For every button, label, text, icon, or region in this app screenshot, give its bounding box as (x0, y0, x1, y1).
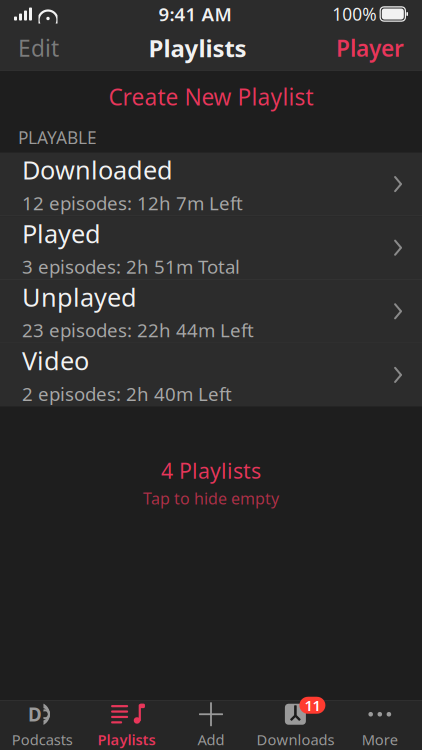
staticText: Podcasts (12, 730, 73, 749)
button[interactable]: Player (318, 26, 422, 70)
staticText: 11 (304, 695, 320, 715)
staticText: 4 Playlists (161, 456, 261, 485)
staticText: Edit (18, 33, 59, 63)
staticText: Played (22, 216, 101, 250)
staticText: 12 episodes: 12h 7m Left (22, 190, 243, 215)
button[interactable]: Played (0, 216, 422, 280)
staticText: Video (22, 344, 89, 377)
button[interactable]: Edit (0, 26, 77, 70)
staticText: Tap to hide empty (143, 488, 279, 509)
staticText: 2 episodes: 2h 40m Left (22, 381, 232, 406)
staticText: Downloaded (22, 153, 173, 186)
button[interactable]: D (0, 701, 84, 750)
staticText: Player (336, 33, 404, 63)
button[interactable]: Downloaded (0, 153, 422, 216)
staticText: Playlists (148, 32, 246, 64)
staticText: More (362, 730, 398, 749)
staticText: Downloads (256, 730, 334, 749)
staticText: 100% (332, 2, 376, 25)
staticText: Unplayed (22, 280, 137, 314)
staticText: 3 episodes: 2h 51m Total (22, 254, 240, 279)
staticText: 9:41 AM (159, 2, 232, 26)
button[interactable]: More (338, 701, 422, 750)
staticText: Create New Playlist (108, 81, 313, 112)
button[interactable]: Add (169, 701, 253, 750)
button[interactable]: Create New Playlist (0, 71, 422, 123)
button[interactable]: Video (0, 343, 422, 406)
button[interactable]: 11 (253, 701, 338, 750)
staticText: Playlists (98, 730, 156, 749)
button[interactable]: Unplayed (0, 280, 422, 343)
button[interactable]: Playlists (84, 701, 169, 750)
staticText: Add (197, 730, 224, 749)
staticText: 23 episodes: 22h 44m Left (22, 318, 254, 342)
button[interactable]: 4 Playlists (0, 406, 422, 509)
staticText: D (28, 702, 42, 727)
staticText: PLAYABLE (18, 126, 97, 149)
